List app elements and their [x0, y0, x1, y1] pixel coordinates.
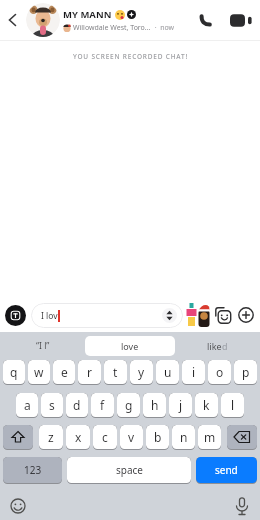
- button[interactable]: [186, 303, 197, 327]
- staticText: d: [222, 340, 228, 352]
- button[interactable]: [162, 308, 177, 323]
- button[interactable]: [233, 497, 251, 515]
- staticText: o: [216, 364, 224, 380]
- staticText: love: [121, 340, 139, 352]
- staticText: y: [138, 364, 145, 380]
- button[interactable]: x: [66, 425, 90, 450]
- staticText: MY MANN: [63, 8, 112, 21]
- button[interactable]: s: [41, 393, 63, 418]
- button[interactable]: i: [182, 360, 205, 385]
- button[interactable]: [5, 305, 26, 326]
- button[interactable]: [9, 497, 27, 515]
- button[interactable]: w: [28, 360, 50, 385]
- staticText: send: [215, 463, 238, 477]
- button[interactable]: b: [146, 425, 169, 450]
- button[interactable]: [0, 0, 26, 40]
- staticText: x: [75, 429, 82, 445]
- staticText: t: [113, 364, 118, 380]
- staticText: l: [231, 397, 235, 413]
- staticText: space: [116, 463, 143, 477]
- button[interactable]: q: [3, 360, 25, 385]
- staticText: m: [204, 429, 216, 445]
- button[interactable]: I lov: [31, 303, 183, 328]
- staticText: j: [179, 397, 183, 413]
- staticText: a: [24, 397, 31, 413]
- button[interactable]: v: [120, 425, 143, 450]
- staticText: like: [207, 340, 222, 352]
- staticText: b: [154, 429, 162, 445]
- button[interactable]: [3, 425, 33, 450]
- staticText: n: [180, 429, 188, 445]
- button[interactable]: t: [104, 360, 127, 385]
- staticText: YOU SCREEN RECORDED CHAT!: [73, 52, 188, 61]
- button[interactable]: c: [93, 425, 117, 450]
- staticText: k: [203, 397, 210, 413]
- staticText: h: [151, 397, 159, 413]
- button[interactable]: n: [172, 425, 195, 450]
- button[interactable]: f: [91, 393, 114, 418]
- button[interactable]: [26, 3, 60, 37]
- staticText: e: [61, 364, 68, 380]
- staticText: c: [102, 429, 108, 445]
- button[interactable]: [227, 425, 257, 450]
- button[interactable]: [238, 307, 254, 323]
- button[interactable]: l: [221, 393, 244, 418]
- button[interactable]: a: [16, 393, 38, 418]
- staticText: · now: [151, 23, 175, 33]
- staticText: p: [242, 364, 250, 380]
- staticText: w: [34, 364, 44, 380]
- staticText: g: [125, 397, 133, 413]
- button[interactable]: p: [234, 360, 257, 385]
- button[interactable]: h: [143, 393, 166, 418]
- button[interactable]: j: [169, 393, 192, 418]
- button[interactable]: space: [67, 457, 191, 484]
- staticText: s: [49, 397, 55, 413]
- button[interactable]: “I l”: [0, 332, 85, 360]
- staticText: i: [192, 364, 196, 380]
- button[interactable]: r: [78, 360, 101, 385]
- button[interactable]: [190, 0, 220, 40]
- button[interactable]: MY MANN: [63, 8, 175, 33]
- button[interactable]: g: [117, 393, 140, 418]
- button[interactable]: send: [196, 457, 257, 484]
- button[interactable]: o: [208, 360, 231, 385]
- button[interactable]: z: [39, 425, 63, 450]
- button[interactable]: e: [53, 360, 75, 385]
- button[interactable]: k: [195, 393, 218, 418]
- staticText: r: [87, 364, 92, 380]
- button[interactable]: d: [66, 393, 88, 418]
- button[interactable]: m: [198, 425, 221, 450]
- button[interactable]: u: [156, 360, 179, 385]
- button[interactable]: [215, 307, 232, 324]
- staticText: d: [73, 397, 81, 413]
- staticText: “I l”: [36, 340, 50, 352]
- button[interactable]: 123: [3, 457, 62, 484]
- button[interactable]: [224, 0, 258, 40]
- button[interactable]: [197, 303, 211, 328]
- staticText: I lov: [41, 310, 58, 322]
- staticText: 123: [24, 463, 42, 477]
- staticText: q: [10, 364, 18, 380]
- staticText: z: [48, 429, 54, 445]
- staticText: u: [164, 364, 172, 380]
- staticText: v: [128, 429, 135, 445]
- staticText: Willowdale West, Toro...: [73, 23, 151, 33]
- staticText: f: [100, 397, 105, 413]
- button[interactable]: love: [85, 336, 175, 356]
- button[interactable]: y: [130, 360, 153, 385]
- button[interactable]: like: [175, 332, 260, 360]
